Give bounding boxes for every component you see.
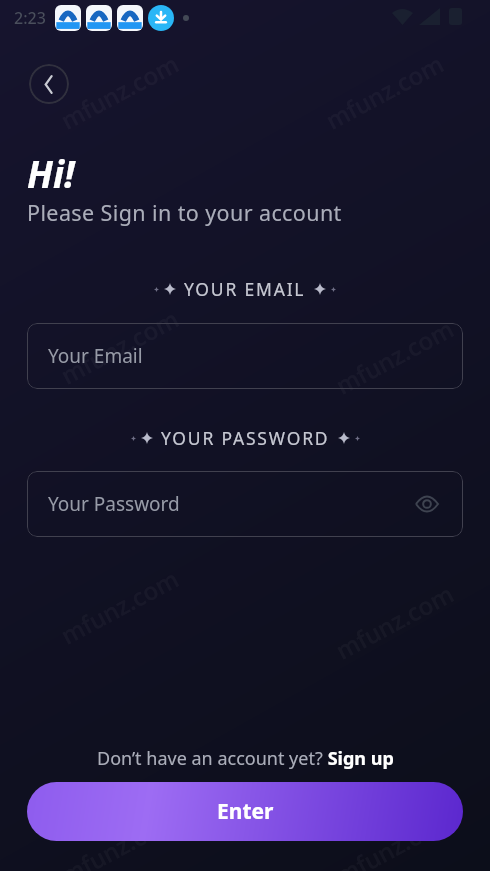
staticText: Your Email bbox=[48, 343, 143, 369]
staticText: YOUR PASSWORD bbox=[161, 426, 330, 450]
button[interactable]: Your Password bbox=[27, 471, 463, 537]
staticText: 2:23 bbox=[14, 7, 46, 29]
button[interactable] bbox=[29, 64, 69, 104]
staticText: Enter bbox=[217, 797, 274, 826]
staticText: mfunz.com bbox=[330, 312, 459, 401]
staticText: Don’t have an account yet? bbox=[97, 746, 323, 771]
button[interactable]: Enter bbox=[27, 782, 463, 841]
staticText: YOUR EMAIL bbox=[184, 277, 306, 301]
staticText: mfunz.com bbox=[55, 802, 184, 871]
button[interactable]: Your Email bbox=[27, 323, 463, 389]
button[interactable]: Sign up bbox=[323, 746, 394, 771]
staticText: Your Password bbox=[48, 491, 180, 517]
staticText: Please Sign in to your account bbox=[27, 198, 342, 227]
staticText: mfunz.com bbox=[55, 302, 184, 391]
staticText: mfunz.com bbox=[330, 802, 459, 871]
staticText: Hi! bbox=[27, 148, 75, 198]
